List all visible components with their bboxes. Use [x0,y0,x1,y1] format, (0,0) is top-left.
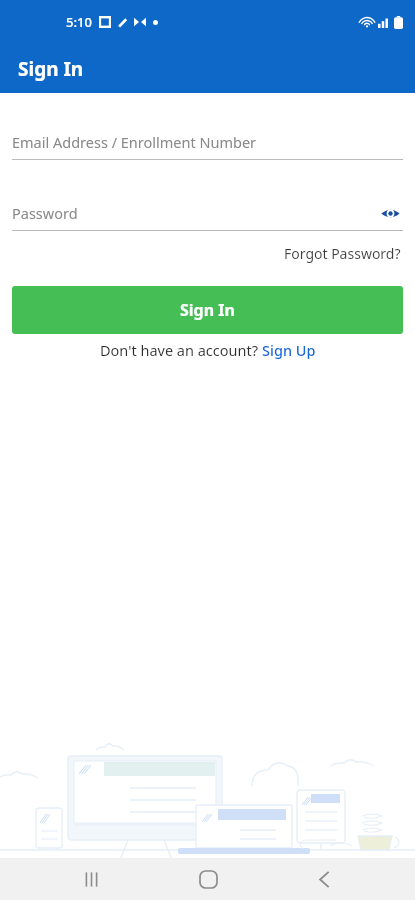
staticText: Sign Up [262,340,316,360]
staticText: Sign In [18,56,84,82]
button[interactable]: Sign Up [262,340,316,360]
button[interactable]: Forgot Password? [282,241,403,266]
staticText: Forgot Password? [284,244,401,263]
button[interactable]: Email Address / Enrollment Number [12,125,403,159]
button[interactable]: Back [299,858,349,900]
staticText: Email Address / Enrollment Number [12,132,257,152]
button[interactable]: Home [183,858,233,900]
staticText: Don't have an account? [100,340,262,360]
staticText: Password [12,203,78,223]
staticText: 5:10 [66,13,92,31]
button[interactable]: Sign In [12,286,403,334]
button[interactable]: Show password [377,200,403,226]
button[interactable]: Recent apps [66,858,116,900]
button[interactable]: Password [12,196,403,230]
staticText: Sign In [180,299,235,321]
